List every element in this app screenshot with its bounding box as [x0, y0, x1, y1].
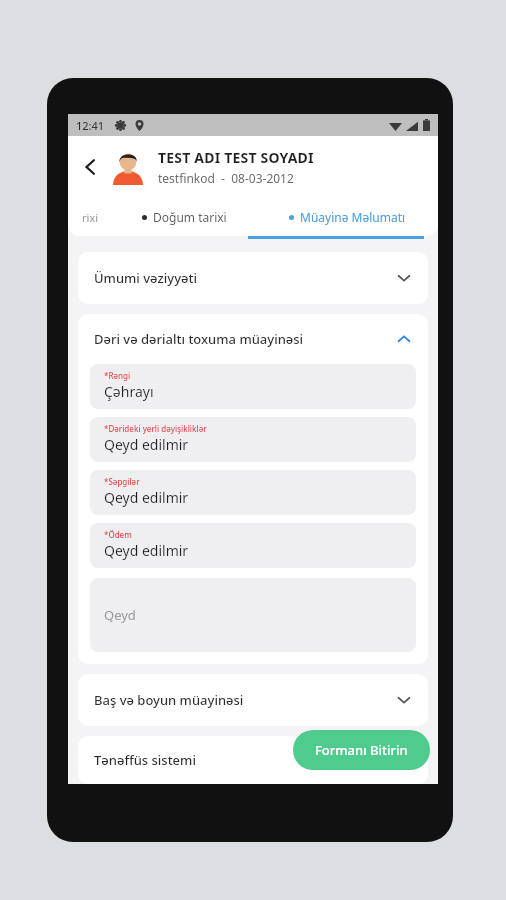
staticText: 12:41	[76, 118, 105, 133]
staticText: *Ödem	[104, 529, 132, 540]
staticText: Doğum tarixi	[153, 209, 227, 225]
button[interactable]: *Rəngi	[90, 364, 416, 409]
staticText: rixi	[82, 210, 99, 225]
button[interactable]: Back	[78, 154, 104, 180]
button[interactable]: Tənəffüs sistemi	[78, 736, 428, 784]
staticText: Qeyd edilmir	[104, 435, 189, 454]
button[interactable]: rixi	[68, 198, 112, 236]
button[interactable]: *Ödem	[90, 523, 416, 568]
staticText: testfinkod - 08-03-2012	[158, 170, 294, 186]
staticText: Tənəffüs sistemi	[94, 751, 396, 769]
button[interactable]: Baş və boyun müayinəsi	[78, 674, 428, 726]
button[interactable]: *Dərideki yerli dəyişikliklər	[90, 417, 416, 462]
staticText: TEST ADI TEST SOYADI	[158, 148, 314, 167]
staticText: Qeyd	[104, 606, 136, 624]
staticText: Qeyd edilmir	[104, 541, 189, 560]
button[interactable]: Qeyd	[90, 578, 416, 652]
button[interactable]: Formanı Bitirin	[293, 730, 430, 770]
staticText: Ümumi vəziyyəti	[94, 269, 396, 287]
button[interactable]: Müayinə Məlumatı	[257, 198, 438, 236]
staticText: *Rəngi	[104, 370, 131, 381]
staticText: Çəhrayı	[104, 382, 154, 401]
button[interactable]: Ümumi vəziyyəti	[78, 252, 428, 304]
button[interactable]: *Səpgilər	[90, 470, 416, 515]
staticText: Baş və boyun müayinəsi	[94, 691, 396, 709]
button[interactable]: Doğum tarixi	[112, 198, 257, 236]
staticText: *Dərideki yerli dəyişikliklər	[104, 423, 207, 434]
staticText: Dəri və dərialtı toxuma müayinəsi	[94, 330, 396, 348]
staticText: Müayinə Məlumatı	[300, 209, 406, 225]
button[interactable]: Dəri və dərialtı toxuma müayinəsi	[78, 314, 428, 364]
staticText: *Səpgilər	[104, 476, 140, 487]
staticText: Qeyd edilmir	[104, 488, 189, 507]
staticText: Formanı Bitirin	[315, 741, 408, 759]
